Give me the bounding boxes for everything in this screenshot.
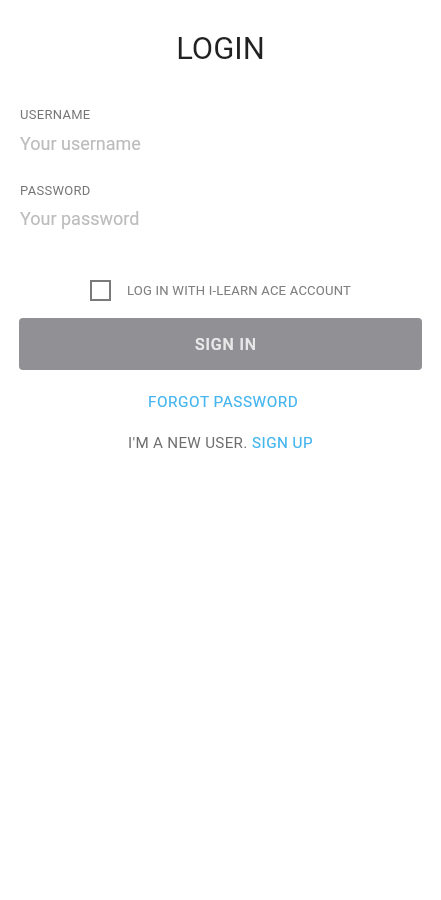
- button[interactable]: SIGN UP: [252, 425, 314, 461]
- staticText: SIGN IN: [195, 335, 257, 354]
- other: Checkbox, unchecked: [90, 280, 111, 301]
- button[interactable]: USERNAME: [0, 100, 441, 162]
- button[interactable]: FORGOT PASSWORD: [138, 384, 309, 420]
- staticText: SIGN UP: [252, 434, 314, 452]
- staticText: PASSWORD: [20, 183, 91, 198]
- staticText: LOGIN: [176, 30, 265, 66]
- staticText: Your username: [20, 133, 141, 154]
- staticText: USERNAME: [20, 107, 91, 122]
- staticText: Your password: [20, 208, 140, 229]
- staticText: FORGOT PASSWORD: [148, 393, 299, 411]
- button[interactable]: SIGN IN: [19, 318, 422, 370]
- button[interactable]: Checkbox, unchecked: [0, 275, 441, 305]
- staticText: I'M A NEW USER.: [128, 434, 248, 452]
- staticText: LOG IN WITH I-LEARN ACE ACCOUNT: [127, 283, 352, 298]
- button[interactable]: PASSWORD: [0, 176, 441, 238]
